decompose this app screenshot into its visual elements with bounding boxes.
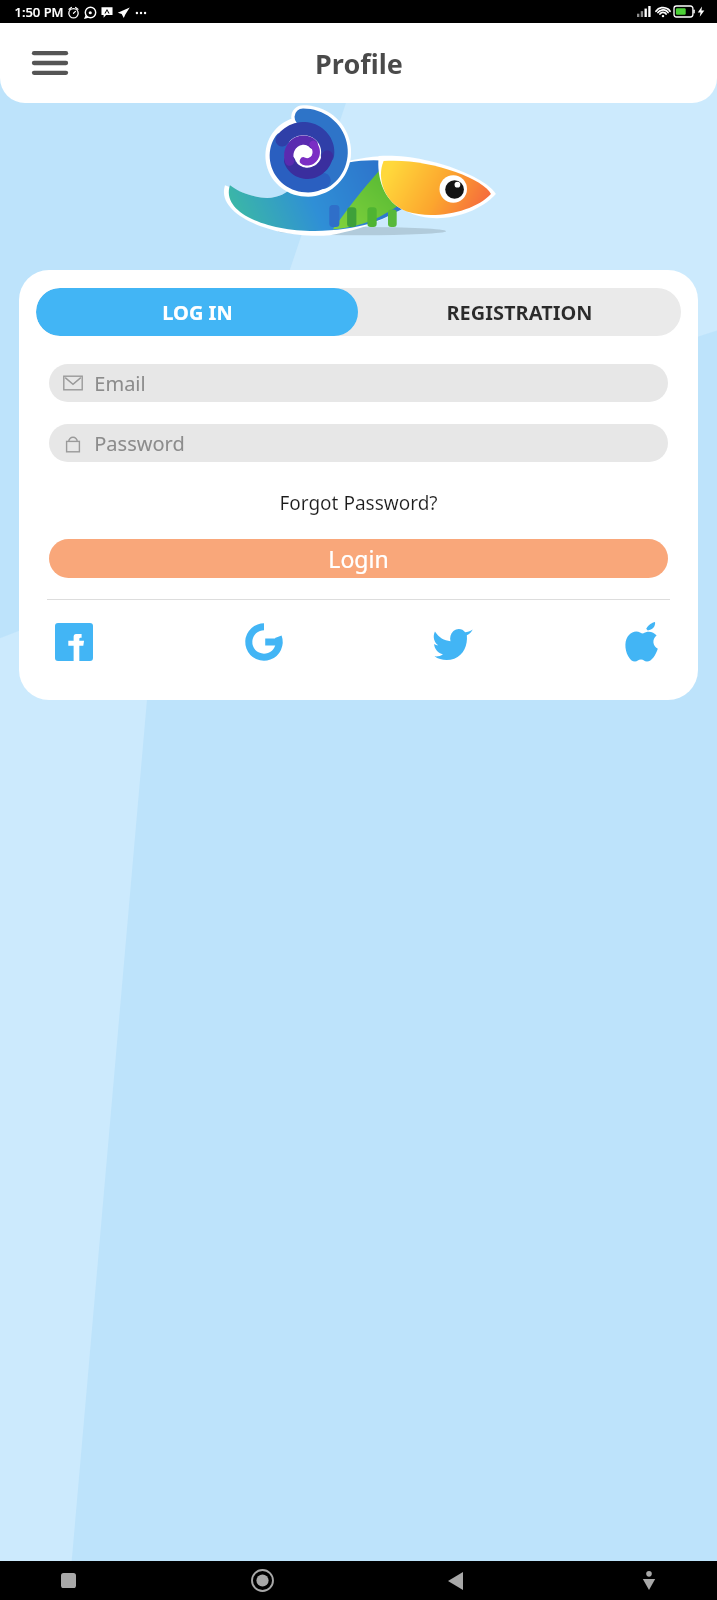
staticText: Forgot Password?: [279, 490, 438, 516]
button[interactable]: REGISTRATION: [358, 288, 681, 336]
button[interactable]: Sign in with Google: [242, 620, 286, 664]
button[interactable]: Sign in with Facebook: [52, 620, 96, 664]
staticText: Login: [328, 543, 389, 574]
button[interactable]: Login: [49, 539, 668, 578]
button[interactable]: Sign in with Twitter: [431, 620, 475, 664]
staticText: 1:50 PM: [14, 3, 64, 21]
button[interactable]: LOG IN: [36, 288, 358, 336]
button[interactable]: Recent apps: [48, 1561, 88, 1600]
staticText: Profile: [315, 45, 403, 82]
button[interactable]: Home: [242, 1561, 282, 1600]
button[interactable]: Password: [49, 424, 668, 462]
staticText: Password: [94, 430, 185, 457]
button[interactable]: Open navigation menu: [28, 41, 72, 85]
button[interactable]: Sign in with Apple: [621, 620, 665, 664]
staticText: Email: [94, 370, 146, 397]
staticText: LOG IN: [162, 299, 233, 326]
button[interactable]: Forgot Password?: [271, 487, 446, 519]
button[interactable]: Email: [49, 364, 668, 402]
button[interactable]: Download: [629, 1561, 669, 1600]
staticText: REGISTRATION: [446, 299, 593, 326]
button[interactable]: Back: [435, 1561, 475, 1600]
